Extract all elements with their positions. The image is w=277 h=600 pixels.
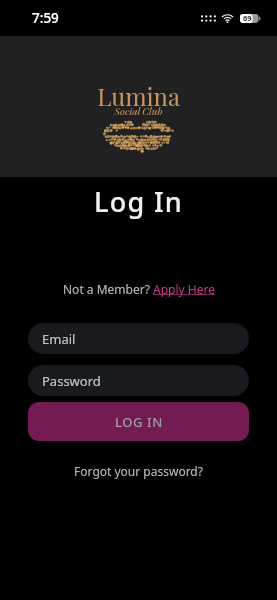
staticText: Lumina: [0, 80, 277, 112]
staticText: Not a Member?: [63, 281, 153, 297]
staticText: 7:59: [32, 9, 59, 27]
button[interactable]: Apply Here: [153, 281, 215, 297]
staticText: Email: [42, 330, 76, 348]
staticText: Log In: [0, 183, 277, 220]
button[interactable]: Email: [28, 323, 249, 354]
staticText: 69: [243, 13, 252, 23]
button[interactable]: Password: [28, 365, 249, 396]
button[interactable]: Forgot your password?: [0, 463, 277, 479]
staticText: LOG IN: [115, 413, 163, 431]
button[interactable]: LOG IN: [28, 402, 249, 441]
staticText: Password: [42, 372, 101, 390]
staticText: Social Club: [0, 104, 277, 117]
